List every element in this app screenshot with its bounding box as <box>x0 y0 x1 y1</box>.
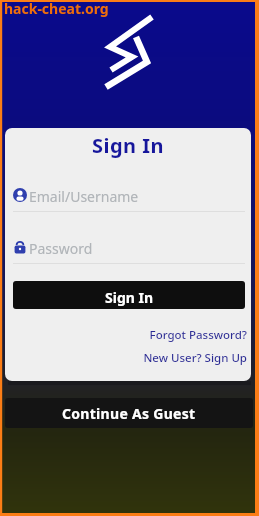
button[interactable]: Forgot Password? <box>5 327 247 343</box>
button[interactable]: Continue As Guest <box>5 398 253 428</box>
button[interactable]: Password <box>13 239 243 255</box>
button[interactable]: Sign In <box>13 281 245 309</box>
staticText: Password <box>29 239 93 255</box>
staticText: Continue As Guest <box>62 404 196 423</box>
staticText: Sign In <box>105 288 154 307</box>
staticText: Email/Username <box>29 187 139 203</box>
button[interactable]: Email/Username <box>13 187 243 203</box>
staticText: hack-cheat.org <box>4 0 109 18</box>
button[interactable]: New User? Sign Up <box>5 350 247 366</box>
staticText: Sign In <box>5 132 251 159</box>
